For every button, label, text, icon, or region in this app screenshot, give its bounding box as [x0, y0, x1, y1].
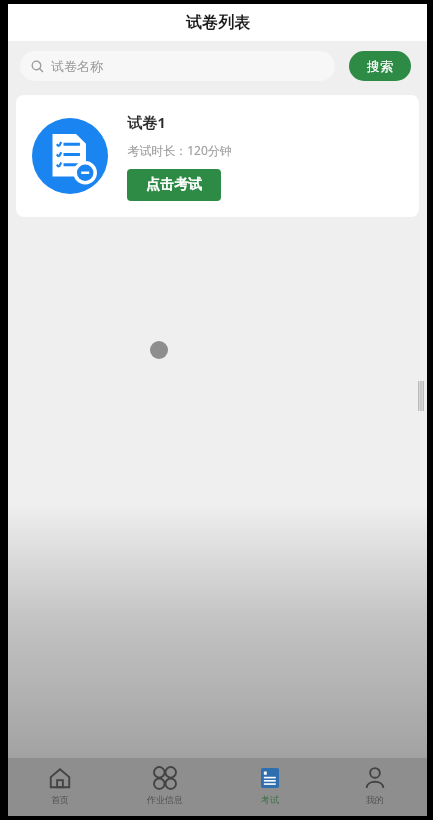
button[interactable]: 考试	[217, 758, 322, 816]
button[interactable]: 我的	[322, 758, 427, 816]
staticText: 点击考试	[146, 176, 202, 194]
button[interactable]: 试卷名称	[20, 51, 335, 81]
staticText: 试卷名称	[51, 58, 103, 74]
other: 作业信息	[154, 767, 176, 789]
staticText: 试卷列表	[186, 13, 250, 33]
staticText: 试卷1	[127, 112, 166, 132]
button[interactable]: 点击考试	[127, 169, 221, 201]
staticText: 考试时长：120分钟	[127, 142, 232, 158]
staticText: 考试	[261, 794, 279, 805]
other: 考试	[259, 767, 281, 789]
button[interactable]: 作业信息	[112, 758, 217, 816]
button[interactable]: 首页	[8, 758, 112, 816]
staticText: 作业信息	[147, 794, 183, 805]
other: 首页	[49, 767, 71, 789]
button[interactable]: 搜索	[349, 51, 411, 81]
staticText: 我的	[366, 794, 384, 805]
staticText: 搜索	[367, 58, 393, 74]
staticText: 首页	[51, 794, 69, 805]
button[interactable]: 试卷1	[16, 95, 419, 217]
other: 我的	[364, 767, 386, 789]
